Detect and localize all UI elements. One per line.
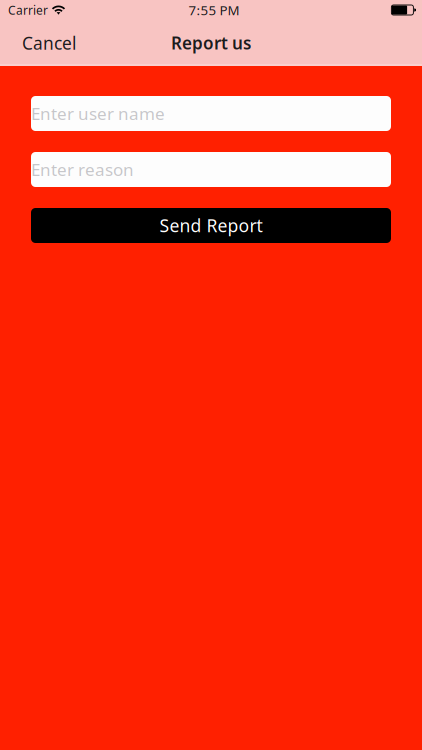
staticText: Cancel	[22, 31, 76, 54]
button[interactable]: Enter reason	[31, 152, 391, 187]
button[interactable]: Cancel	[0, 21, 98, 65]
staticText: Enter reason	[31, 158, 134, 181]
staticText: Send Report	[159, 214, 262, 237]
button[interactable]: Send Report	[31, 208, 391, 243]
staticText: 7:55 PM	[188, 1, 239, 19]
staticText: Carrier	[8, 2, 48, 18]
staticText: Enter user name	[31, 102, 165, 125]
staticText: Report us	[171, 32, 251, 54]
button[interactable]: Enter user name	[31, 96, 391, 131]
